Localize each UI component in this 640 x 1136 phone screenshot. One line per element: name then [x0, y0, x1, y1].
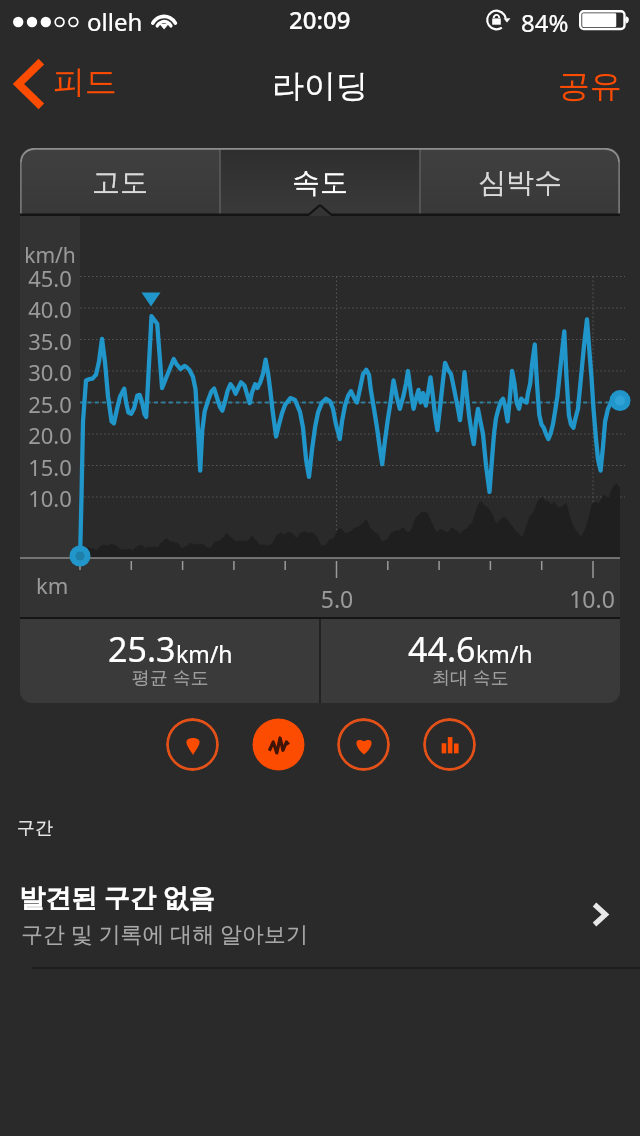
staticText: 40.0 [20, 294, 80, 324]
button[interactable]: 심박수 [420, 148, 620, 216]
staticText: km/h [176, 638, 233, 669]
staticText: 45.0 [20, 263, 80, 293]
staticText: 25.0 [20, 389, 80, 419]
staticText: 최대 속도 [432, 665, 509, 690]
button[interactable]: Heart rate [337, 718, 390, 771]
staticText: 35.0 [20, 326, 80, 356]
staticText: 20:09 [289, 3, 351, 36]
button[interactable]: 구간 [17, 817, 53, 840]
staticText: 속도 [292, 165, 348, 200]
staticText: 30.0 [20, 357, 80, 387]
button[interactable]: 속도 [220, 148, 420, 216]
staticText: 심박수 [478, 165, 562, 200]
staticText: 피드 [53, 62, 117, 102]
staticText: 발견된 구간 없음 [19, 879, 215, 915]
staticText: km [36, 570, 69, 600]
button[interactable]: Stats [423, 718, 476, 771]
staticText: 20.0 [20, 420, 80, 450]
staticText: olleh [87, 5, 143, 38]
staticText: km/h [476, 638, 533, 669]
staticText: 라이딩 [272, 66, 368, 106]
staticText: 10.0 [20, 483, 80, 513]
button[interactable]: 공유 [538, 53, 640, 121]
staticText: 구간 및 기록에 대해 알아보기 [21, 918, 308, 948]
button[interactable]: 피드 [0, 53, 120, 115]
button[interactable]: 발견된 구간 없음 [0, 855, 640, 968]
staticText: 평균 속도 [132, 665, 209, 690]
button[interactable]: Map [166, 718, 219, 771]
staticText: 84% [521, 6, 569, 39]
staticText: 10.0 [552, 583, 632, 614]
button[interactable]: 고도 [20, 148, 220, 216]
button[interactable]: 25.3 [20, 619, 320, 703]
staticText: km/h [20, 241, 80, 270]
staticText: 15.0 [20, 452, 80, 482]
staticText: 25.3 [108, 626, 176, 672]
staticText: 고도 [92, 165, 148, 200]
button[interactable]: 44.6 [320, 619, 620, 703]
staticText: 5.0 [297, 583, 377, 614]
button[interactable]: Speed [252, 718, 305, 771]
staticText: 44.6 [408, 626, 476, 672]
